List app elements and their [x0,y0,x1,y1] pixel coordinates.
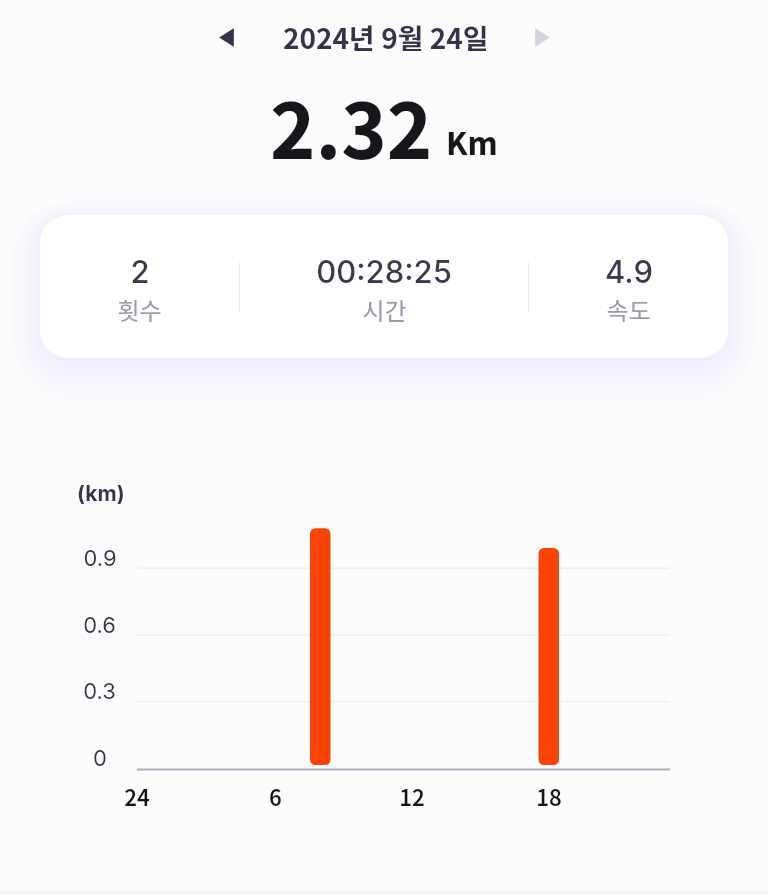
staticText: 2024년 9월 24일 [283,17,489,58]
staticText: 시간 [362,292,407,327]
button[interactable]: 00:28:25 [240,215,528,358]
button[interactable]: 2 [40,215,239,358]
staticText: Km [446,119,498,164]
staticText: 24 [124,780,150,812]
button[interactable]: Previous day [203,13,251,61]
staticText: (km) [77,481,125,506]
staticText: 2 [130,253,150,291]
staticText: 0 [93,745,107,772]
button[interactable]: 4.9 [529,215,728,358]
staticText: 횟수 [117,292,162,327]
staticText: 18 [536,780,562,812]
button[interactable]: Next day [517,13,565,61]
staticText: 0.9 [83,545,117,572]
staticText: 0.3 [83,678,116,705]
staticText: 6 [269,780,282,812]
staticText: 0.6 [83,612,116,639]
staticText: 4.9 [605,253,653,291]
staticText: 12 [399,780,425,812]
button[interactable]: 2 [40,215,728,358]
staticText: 속도 [606,292,651,327]
staticText: 00:28:25 [316,253,452,291]
staticText: 2.32 [270,71,433,181]
